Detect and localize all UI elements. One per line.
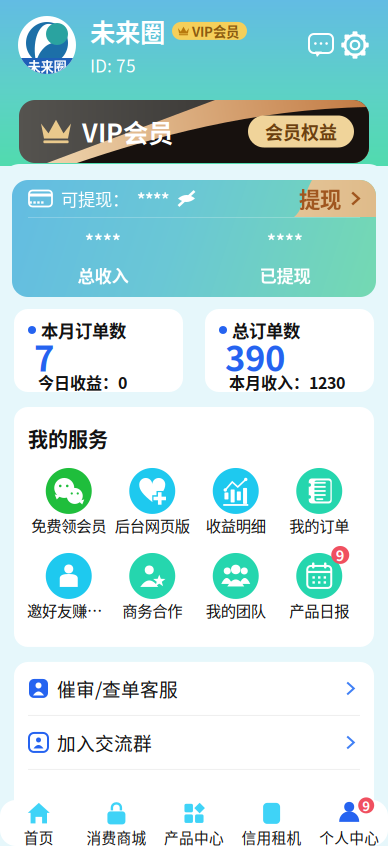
staticText: 未来圈 bbox=[27, 56, 66, 76]
staticText: 信用租机 bbox=[242, 826, 302, 846]
button[interactable]: 首页 bbox=[0, 798, 78, 846]
button[interactable]: 免费领会员 bbox=[27, 468, 110, 536]
button[interactable]: 消息 bbox=[304, 28, 338, 62]
staticText: 9 bbox=[362, 796, 370, 815]
button[interactable]: 收益明细 bbox=[194, 468, 277, 536]
staticText: 7 bbox=[34, 331, 54, 382]
staticText: 产品日报 bbox=[289, 599, 349, 621]
staticText: 我的订单 bbox=[289, 514, 349, 536]
button[interactable]: 加入交流群 bbox=[14, 716, 374, 769]
staticText: 收益明细 bbox=[206, 514, 266, 536]
staticText: 个人中心 bbox=[319, 826, 379, 846]
staticText: **** bbox=[267, 227, 303, 252]
staticText: ID: 75 bbox=[90, 52, 136, 77]
staticText: 后台网页版 bbox=[115, 514, 190, 536]
staticText: 本月订单数 bbox=[41, 317, 126, 343]
staticText: 本月收入：1230 bbox=[229, 370, 345, 394]
button[interactable]: 设置 bbox=[338, 28, 372, 62]
button[interactable]: 产品中心 bbox=[155, 798, 233, 846]
staticText: 今日收益：0 bbox=[38, 370, 127, 394]
staticText: 消费商城 bbox=[86, 826, 146, 846]
staticText: VIP会员 bbox=[192, 21, 239, 41]
button[interactable]: 9 bbox=[310, 798, 388, 846]
staticText: 加入交流群 bbox=[57, 729, 152, 756]
button[interactable]: 商务合作 bbox=[110, 553, 194, 621]
button[interactable]: 我的订单 bbox=[277, 468, 361, 536]
staticText: 390 bbox=[225, 331, 285, 382]
button[interactable]: 后台网页版 bbox=[110, 468, 194, 536]
staticText: **** bbox=[85, 227, 121, 252]
button[interactable]: VIP会员 bbox=[19, 100, 369, 163]
button[interactable]: 催审/查单客服 bbox=[14, 662, 374, 715]
staticText: 会员权益 bbox=[265, 118, 337, 145]
staticText: VIP会员 bbox=[82, 113, 173, 150]
button[interactable]: 信用租机 bbox=[233, 798, 310, 846]
staticText: 我的服务 bbox=[28, 424, 108, 453]
staticText: 总收入 bbox=[77, 262, 128, 288]
staticText: 免费领会员 bbox=[31, 514, 106, 536]
staticText: 提现 bbox=[299, 183, 341, 214]
staticText: 可提现： bbox=[61, 186, 129, 211]
staticText: 商务合作 bbox=[122, 599, 182, 621]
staticText: 产品中心 bbox=[164, 826, 224, 846]
button[interactable]: 9 bbox=[277, 553, 361, 621]
button[interactable]: 消费商城 bbox=[78, 798, 155, 846]
staticText: 首页 bbox=[24, 826, 54, 846]
staticText: **** bbox=[137, 186, 169, 210]
staticText: 邀好友赚佣金 bbox=[27, 599, 110, 621]
button[interactable]: 邀好友赚佣金 bbox=[27, 553, 110, 621]
staticText: 未来圈 bbox=[90, 13, 165, 49]
staticText: 总订单数 bbox=[232, 317, 300, 343]
button[interactable]: 提现 bbox=[277, 180, 383, 217]
staticText: 已提现 bbox=[259, 262, 310, 288]
staticText: 催审/查单客服 bbox=[57, 675, 178, 702]
button[interactable]: 我的团队 bbox=[194, 553, 277, 621]
staticText: 9 bbox=[336, 544, 345, 565]
staticText: 我的团队 bbox=[206, 599, 266, 621]
